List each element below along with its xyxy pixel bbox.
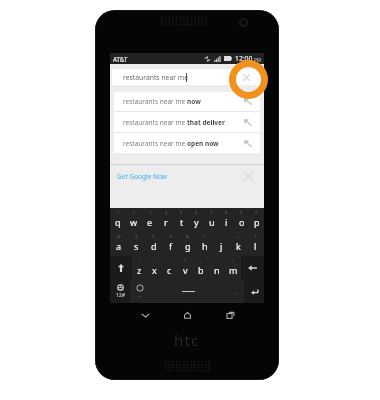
staticText: # <box>135 234 138 239</box>
button[interactable]: ; <box>193 256 209 280</box>
staticText: g <box>185 240 191 252</box>
staticText: AT&T <box>113 55 128 63</box>
button[interactable]: % <box>162 232 179 256</box>
button[interactable]: Backspace <box>241 256 264 280</box>
button[interactable]: ! <box>132 256 147 280</box>
button[interactable]: 2 <box>126 208 142 232</box>
button[interactable]: restaurants near me <box>112 69 262 85</box>
button[interactable]: - <box>213 232 230 256</box>
staticText: restaurants near me <box>123 118 187 127</box>
staticText: l <box>254 240 257 252</box>
button[interactable]: Space <box>150 280 227 303</box>
button[interactable]: # <box>128 232 145 256</box>
staticText: f <box>169 240 173 252</box>
button[interactable]: restaurants near me <box>114 133 260 153</box>
staticText: + <box>237 234 240 239</box>
button[interactable]: Clear query <box>240 71 252 83</box>
button[interactable]: " <box>147 256 162 280</box>
other: Highlight <box>229 60 268 99</box>
button[interactable]: + <box>230 232 247 256</box>
staticText: h <box>202 240 208 252</box>
staticText: w <box>130 216 138 228</box>
staticText: d <box>151 240 157 252</box>
button[interactable]: 5 <box>174 208 189 232</box>
button[interactable]: / <box>225 256 241 280</box>
staticText: u <box>209 216 215 228</box>
button[interactable]: 8 <box>219 208 234 232</box>
staticText: 8 <box>225 210 228 215</box>
staticText: ; <box>200 258 202 263</box>
staticText: 1 <box>117 210 120 215</box>
staticText: 5 <box>180 210 183 215</box>
staticText: PM <box>254 57 261 63</box>
staticText: a <box>116 240 122 252</box>
staticText: q <box>115 216 121 228</box>
staticText: 7 <box>210 210 213 215</box>
staticText: z <box>137 264 142 276</box>
staticText: p <box>254 216 260 228</box>
button[interactable]: Home <box>179 307 195 323</box>
staticText: 6 <box>195 210 198 215</box>
button[interactable]: Enter <box>244 280 264 303</box>
staticText: @ <box>117 234 121 239</box>
staticText: Get Google Now <box>117 172 167 181</box>
staticText: htc <box>174 330 200 348</box>
button[interactable]: 9 <box>234 208 249 232</box>
button[interactable]: Back <box>137 307 153 323</box>
staticText: * <box>203 234 206 239</box>
staticText: " <box>154 258 156 263</box>
button[interactable]: : <box>209 256 225 280</box>
button[interactable]: ? <box>177 256 193 280</box>
button[interactable]: ( <box>247 232 264 256</box>
button[interactable]: 0 <box>249 208 264 232</box>
staticText: e <box>147 216 153 228</box>
staticText: i <box>225 216 228 228</box>
button[interactable]: Insert suggestion <box>243 97 252 106</box>
staticText: t <box>180 216 184 228</box>
staticText: that deliver <box>187 118 225 127</box>
button[interactable]: Insert suggestion <box>243 118 252 127</box>
staticText: 0 <box>255 210 258 215</box>
staticText: , <box>139 292 141 299</box>
staticText: r <box>164 216 168 228</box>
button[interactable]: restaurants near me <box>114 92 260 111</box>
staticText: x <box>152 264 157 276</box>
staticText: - <box>221 234 223 239</box>
staticText: ! <box>139 258 141 263</box>
button[interactable]: 3 <box>142 208 158 232</box>
button[interactable]: * <box>196 232 213 256</box>
button[interactable]: @ <box>110 232 128 256</box>
staticText: now <box>187 97 201 106</box>
button[interactable]: Dismiss <box>243 171 254 182</box>
button[interactable]: 7 <box>204 208 219 232</box>
button[interactable]: Get Google Now <box>110 165 264 187</box>
button[interactable]: $ <box>145 232 162 256</box>
staticText: restaurants near me <box>123 139 187 148</box>
button[interactable]: Recents <box>222 307 238 323</box>
staticText: 12:00 <box>235 54 253 63</box>
staticText: restaurants near me <box>123 73 188 82</box>
button[interactable]: Symbols <box>110 280 130 303</box>
staticText: 4 <box>165 210 168 215</box>
staticText: . <box>235 288 237 296</box>
staticText: ( <box>255 234 257 239</box>
staticText: y <box>194 216 199 228</box>
button[interactable]: 6 <box>189 208 204 232</box>
staticText: 12# <box>116 292 125 299</box>
button[interactable]: 4 <box>158 208 174 232</box>
button[interactable]: & <box>179 232 196 256</box>
button[interactable]: Shift <box>110 256 132 280</box>
button[interactable]: Insert suggestion <box>243 139 252 148</box>
staticText: k <box>236 240 241 252</box>
staticText: m <box>229 264 238 276</box>
staticText: o <box>239 216 245 228</box>
staticText: restaurants near me <box>123 97 187 106</box>
staticText: s <box>134 240 139 252</box>
button[interactable]: Settings <box>130 280 150 303</box>
button[interactable]: ' <box>162 256 177 280</box>
button[interactable]: 1 <box>110 208 126 232</box>
button[interactable]: restaurants near me <box>114 112 260 132</box>
staticText: c <box>167 264 172 276</box>
staticText: b <box>198 264 204 276</box>
